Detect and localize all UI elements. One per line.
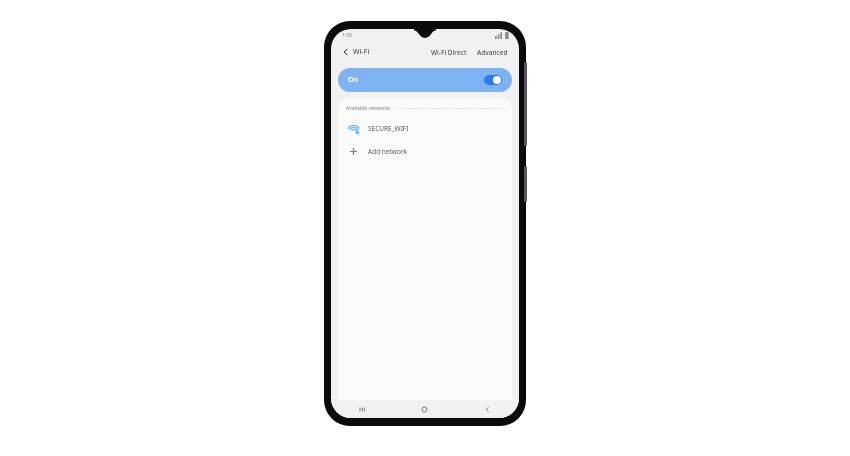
- button[interactable]: Home: [393, 400, 456, 418]
- button[interactable]: SECURE_WIFI: [338, 118, 512, 138]
- button[interactable]: Back: [456, 400, 519, 418]
- button[interactable]: Add network: [338, 141, 512, 161]
- button[interactable]: Back: [339, 45, 353, 59]
- staticText: SECURE_WIFI: [368, 124, 409, 133]
- button[interactable]: Recent apps: [331, 400, 393, 418]
- staticText: Available networks: [346, 105, 391, 112]
- button[interactable]: Advanced: [474, 46, 511, 59]
- staticText: 1:50: [342, 32, 352, 39]
- staticText: Wi-Fi: [353, 47, 370, 57]
- button[interactable]: On: [338, 68, 512, 92]
- staticText: Wi-Fi Direct: [431, 48, 467, 57]
- button[interactable]: Wi-Fi Direct: [428, 46, 470, 59]
- staticText: Add network: [368, 147, 408, 156]
- staticText: Advanced: [477, 48, 508, 57]
- staticText: On: [348, 75, 358, 85]
